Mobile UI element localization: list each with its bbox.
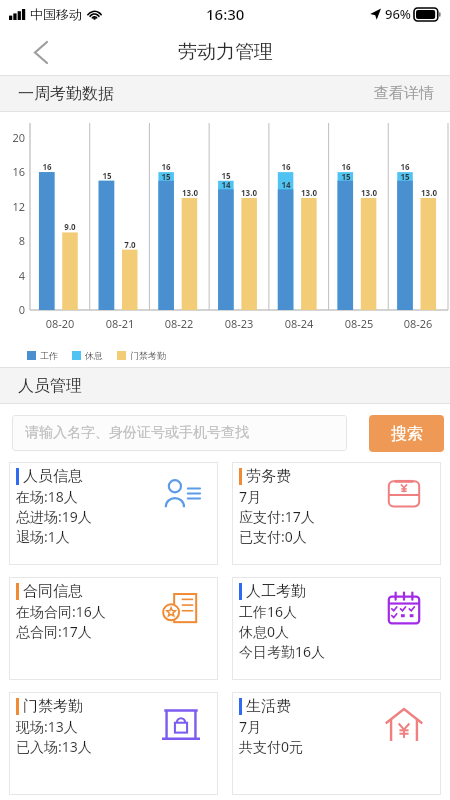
staticText: 15 bbox=[95, 170, 119, 181]
staticText: 08-21 bbox=[90, 316, 150, 331]
staticText: 共支付0元 bbox=[239, 737, 304, 756]
staticText: 在场合同:16人 bbox=[16, 602, 106, 621]
staticText: 请输入名字、身份证号或手机号查找 bbox=[25, 424, 249, 442]
staticText: 15 bbox=[334, 171, 358, 182]
button[interactable]: 门禁考勤 bbox=[9, 692, 218, 795]
staticText: 20 bbox=[0, 130, 25, 145]
staticText: 总进场:19人 bbox=[16, 507, 92, 526]
staticText: 人工考勤 bbox=[246, 582, 306, 601]
button[interactable]: 人员信息 bbox=[9, 462, 218, 565]
staticText: 13.0 bbox=[293, 187, 325, 198]
staticText: 08-25 bbox=[329, 316, 389, 331]
staticText: 人员信息 bbox=[23, 467, 83, 486]
staticText: 在场:18人 bbox=[16, 487, 78, 506]
staticText: 08-22 bbox=[149, 316, 209, 331]
staticText: 16:30 bbox=[206, 4, 245, 24]
staticText: 08-23 bbox=[209, 316, 269, 331]
staticText: 12 bbox=[0, 199, 25, 214]
staticText: 生活费 bbox=[246, 697, 291, 716]
staticText: 13.0 bbox=[413, 187, 445, 198]
staticText: 查看详情 bbox=[374, 84, 434, 103]
staticText: 16 bbox=[35, 161, 59, 172]
staticText: 13.0 bbox=[353, 187, 385, 198]
staticText: 休息 bbox=[85, 350, 103, 361]
staticText: 劳务费 bbox=[246, 467, 291, 486]
staticText: 总合同:17人 bbox=[16, 622, 92, 641]
button[interactable]: 劳务费 bbox=[232, 462, 441, 565]
staticText: 7月 bbox=[239, 717, 262, 736]
staticText: 13.0 bbox=[174, 187, 206, 198]
button[interactable]: Back bbox=[24, 35, 58, 69]
button[interactable]: 查看详情 bbox=[358, 75, 450, 112]
staticText: 08-26 bbox=[388, 316, 448, 331]
staticText: 15 bbox=[214, 170, 238, 181]
button[interactable]: 请输入名字、身份证号或手机号查找 bbox=[12, 415, 347, 451]
staticText: 8 bbox=[0, 233, 25, 248]
staticText: 工作16人 bbox=[239, 602, 298, 621]
staticText: 一周考勤数据 bbox=[18, 84, 114, 104]
staticText: 16 bbox=[334, 161, 358, 172]
staticText: 9.0 bbox=[54, 221, 86, 232]
staticText: 现场:13人 bbox=[16, 717, 78, 736]
staticText: 中国移动 bbox=[30, 6, 82, 22]
staticText: 15 bbox=[154, 171, 178, 182]
staticText: 4 bbox=[0, 268, 25, 283]
staticText: 15 bbox=[393, 171, 417, 182]
staticText: 16 bbox=[0, 164, 25, 179]
staticText: 应支付:17人 bbox=[239, 507, 315, 526]
staticText: 0 bbox=[0, 302, 25, 317]
staticText: 休息0人 bbox=[239, 622, 290, 641]
staticText: 08-20 bbox=[30, 316, 90, 331]
staticText: 退场:1人 bbox=[16, 527, 70, 546]
staticText: 劳动力管理 bbox=[178, 40, 273, 64]
staticText: 13.0 bbox=[233, 187, 265, 198]
staticText: 门禁考勤 bbox=[23, 697, 83, 716]
staticText: 搜索 bbox=[391, 424, 423, 444]
staticText: 14 bbox=[274, 179, 298, 190]
staticText: 已入场:13人 bbox=[16, 737, 92, 756]
staticText: 工作 bbox=[40, 350, 58, 361]
staticText: 门禁考勤 bbox=[130, 350, 166, 361]
staticText: 今日考勤16人 bbox=[239, 642, 326, 661]
button[interactable]: 生活费 bbox=[232, 692, 441, 795]
staticText: 已支付:0人 bbox=[239, 527, 307, 546]
button[interactable]: 合同信息 bbox=[9, 577, 218, 680]
staticText: 7.0 bbox=[114, 239, 146, 250]
staticText: 14 bbox=[214, 179, 238, 190]
staticText: 16 bbox=[393, 161, 417, 172]
button[interactable]: 人工考勤 bbox=[232, 577, 441, 680]
staticText: 人员管理 bbox=[18, 376, 82, 396]
staticText: 16 bbox=[274, 161, 298, 172]
staticText: 合同信息 bbox=[23, 582, 83, 601]
staticText: 08-24 bbox=[269, 316, 329, 331]
staticText: 96% bbox=[385, 5, 411, 23]
staticText: 16 bbox=[154, 161, 178, 172]
button[interactable]: 搜索 bbox=[369, 415, 444, 452]
staticText: 7月 bbox=[239, 487, 262, 506]
